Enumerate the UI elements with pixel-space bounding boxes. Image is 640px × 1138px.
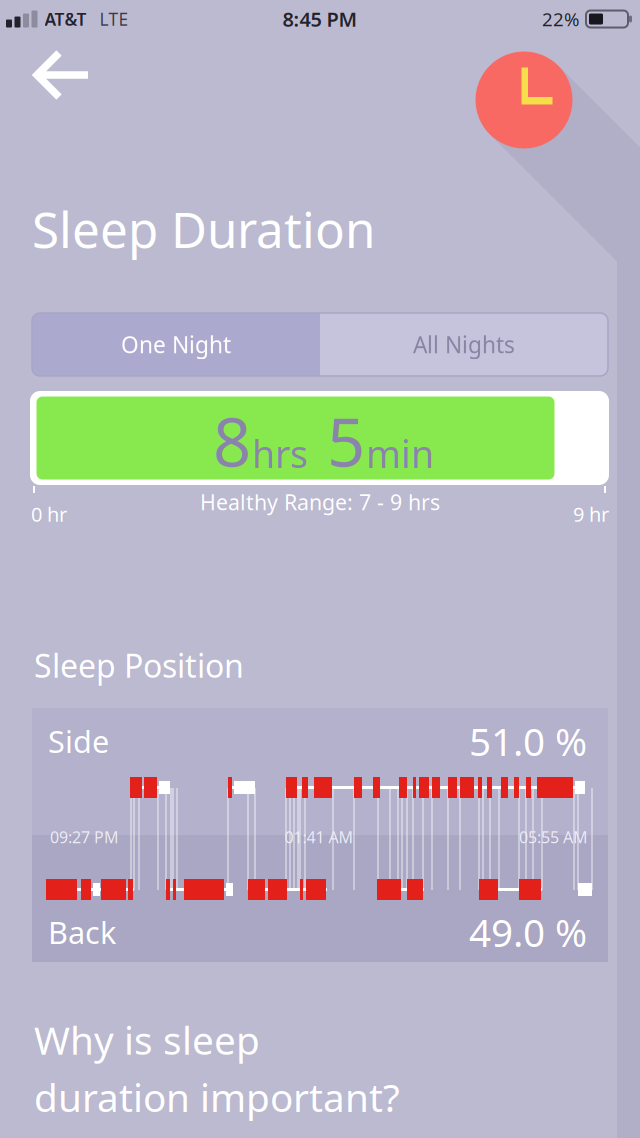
staticText: Healthy Range: 7 - 9 hrs [200,488,440,516]
staticText: AT&T [44,7,86,30]
button[interactable]: Clock [475,51,572,148]
staticText: All Nights [413,329,515,359]
button[interactable]: One Night [32,313,320,376]
staticText: Sleep Duration [32,196,375,261]
staticText: Side [48,721,109,761]
staticText: One Night [121,329,231,359]
staticText: 49.0 % [469,906,587,958]
staticText: Back [48,912,116,952]
staticText: 05:55 AM [519,826,588,848]
staticText: LTE [99,7,128,30]
staticText: 51.0 % [469,715,587,767]
staticText: 09:27 PM [50,826,119,848]
staticText: 8:45 PM [282,6,357,32]
staticText: 8 [213,397,251,485]
staticText: 22% [542,7,580,31]
staticText: 01:41 AM [284,826,353,848]
staticText: 5 [327,397,365,485]
staticText: min [366,429,434,478]
staticText: Sleep Position [34,644,244,686]
staticText: hrs [252,429,308,478]
staticText: duration important? [34,1071,400,1123]
button[interactable]: All Nights [320,313,608,376]
button[interactable]: Back [30,50,94,100]
staticText: Why is sleep [34,1014,260,1065]
staticText: 9 hr [573,501,609,527]
staticText: 0 hr [31,501,67,527]
